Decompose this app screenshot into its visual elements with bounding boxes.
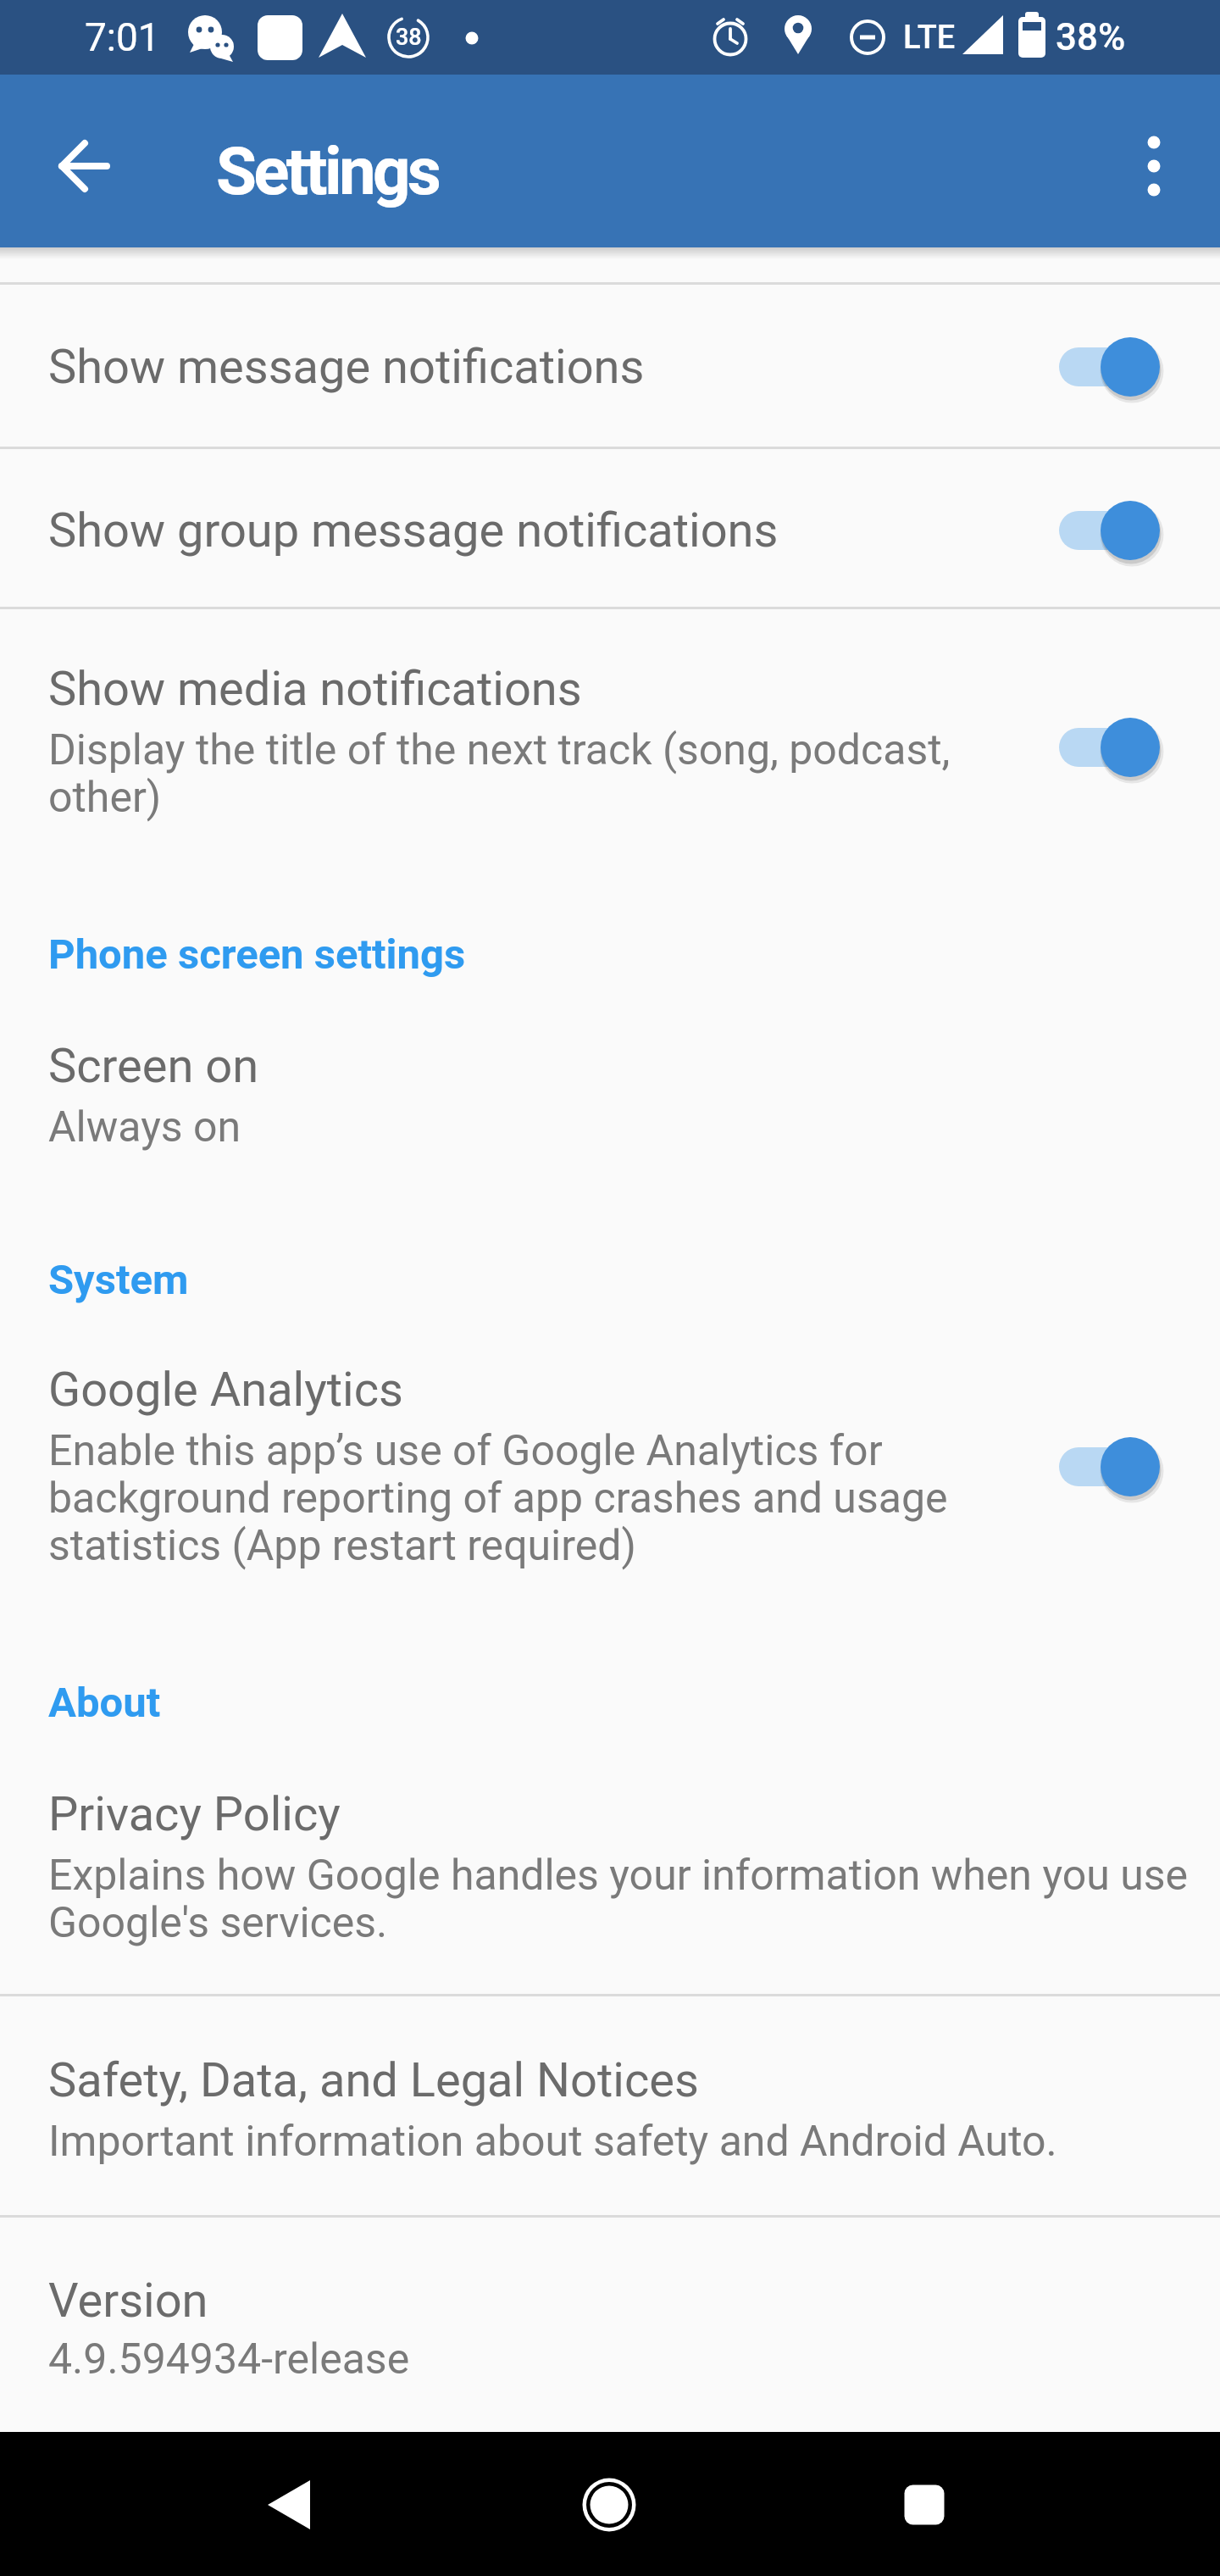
staticText: Show message notifications [48, 339, 645, 395]
staticText: System [48, 1256, 189, 1304]
button[interactable] [1110, 122, 1198, 215]
button[interactable] [882, 2462, 967, 2547]
staticText: Important information about safety and A… [48, 2117, 1057, 2167]
button[interactable]: Show group message notifications [0, 449, 1220, 607]
staticText: Explains how Google handles your informa… [48, 1851, 1189, 1901]
staticText: Show group message notifications [48, 502, 779, 558]
button[interactable] [41, 124, 125, 208]
staticText: Google Analytics [48, 1362, 403, 1418]
staticText: Phone screen settings [48, 930, 466, 979]
staticText: statistics (App restart required) [48, 1521, 636, 1571]
staticText: Show media notifications [48, 661, 582, 717]
button[interactable]: Privacy Policy [0, 1758, 1220, 1994]
button[interactable] [1059, 500, 1162, 561]
staticText: Display the title of the next track (son… [48, 725, 951, 775]
staticText: 4.9.594934-release [48, 2334, 410, 2384]
button[interactable] [1059, 1436, 1162, 1497]
button[interactable] [1059, 717, 1162, 778]
staticText: 38% [1056, 15, 1126, 59]
button[interactable]: Version [0, 2218, 1220, 2432]
staticText: other) [48, 773, 162, 823]
button[interactable]: Google Analytics [0, 1322, 1220, 1602]
staticText: Version [48, 2273, 208, 2329]
staticText: Screen on [48, 1038, 259, 1094]
staticText: background reporting of app crashes and … [48, 1474, 948, 1524]
staticText: Settings [216, 133, 439, 210]
button[interactable]: Show media notifications [0, 609, 1220, 864]
button[interactable]: Show message notifications [0, 285, 1220, 447]
staticText: Enable this app’s use of Google Analytic… [48, 1426, 883, 1476]
staticText: Google's services. [48, 1898, 388, 1948]
staticText: Privacy Policy [48, 1786, 341, 1842]
staticText: Always on [48, 1102, 241, 1152]
staticText: LTE [903, 19, 956, 57]
button[interactable]: Screen on [0, 1000, 1220, 1186]
button[interactable] [1059, 336, 1162, 397]
staticText: 7:01 [85, 14, 160, 60]
button[interactable] [247, 2462, 331, 2547]
button[interactable] [567, 2462, 652, 2547]
staticText: 38 [396, 24, 422, 51]
button[interactable]: Safety, Data, and Legal Notices [0, 1996, 1220, 2215]
staticText: About [48, 1679, 161, 1727]
staticText: Safety, Data, and Legal Notices [48, 2052, 699, 2108]
